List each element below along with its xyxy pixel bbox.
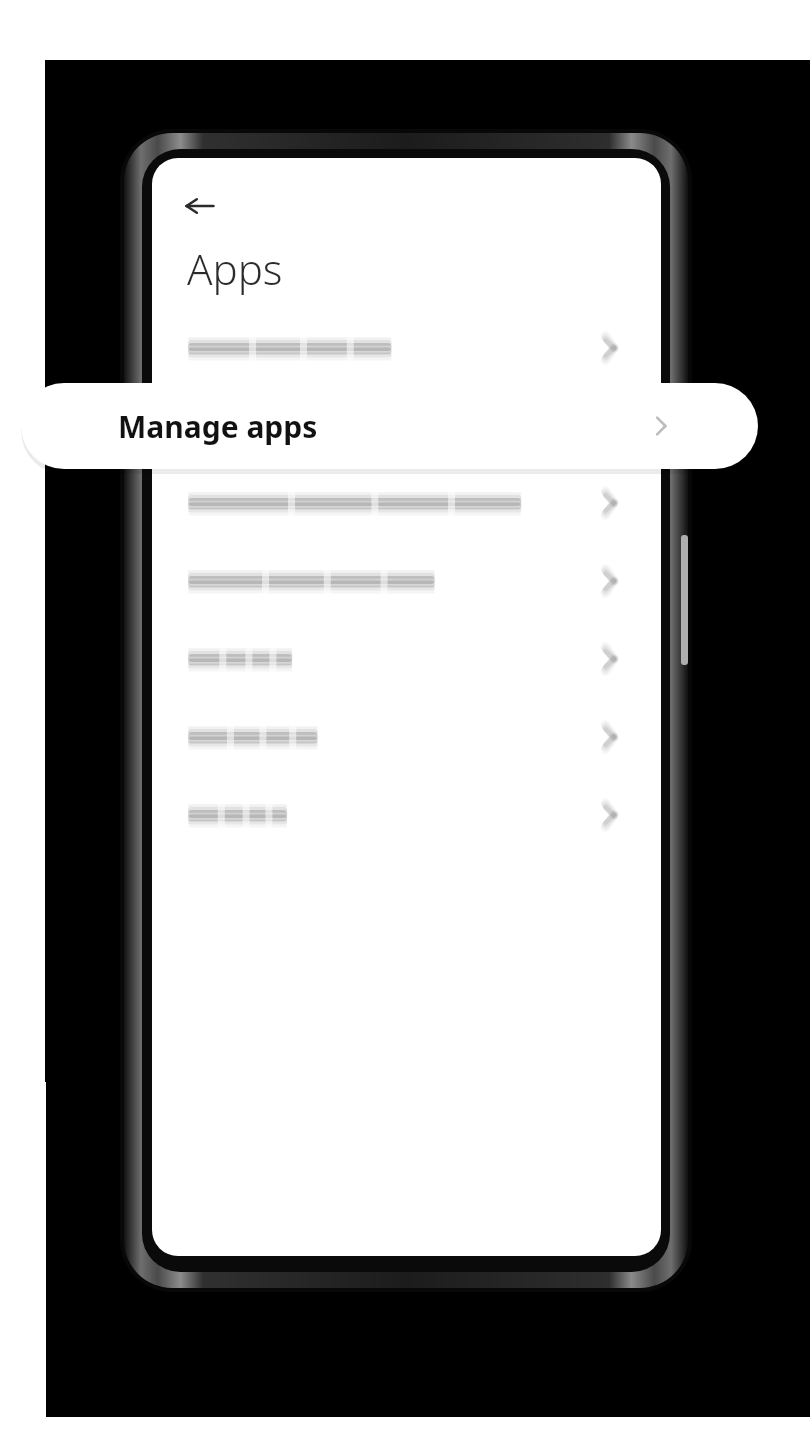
- staticText: Apps: [187, 240, 283, 297]
- button[interactable]: Settings item: [152, 620, 661, 698]
- button[interactable]: Manage apps: [21, 383, 758, 469]
- button[interactable]: Back: [172, 178, 228, 234]
- button[interactable]: Settings item: [152, 776, 661, 854]
- staticText: Manage apps: [118, 406, 318, 447]
- button[interactable]: Settings item: [152, 309, 661, 387]
- button[interactable]: Settings item: [152, 698, 661, 776]
- button[interactable]: Settings item: [152, 464, 661, 542]
- button[interactable]: Settings item: [152, 542, 661, 620]
